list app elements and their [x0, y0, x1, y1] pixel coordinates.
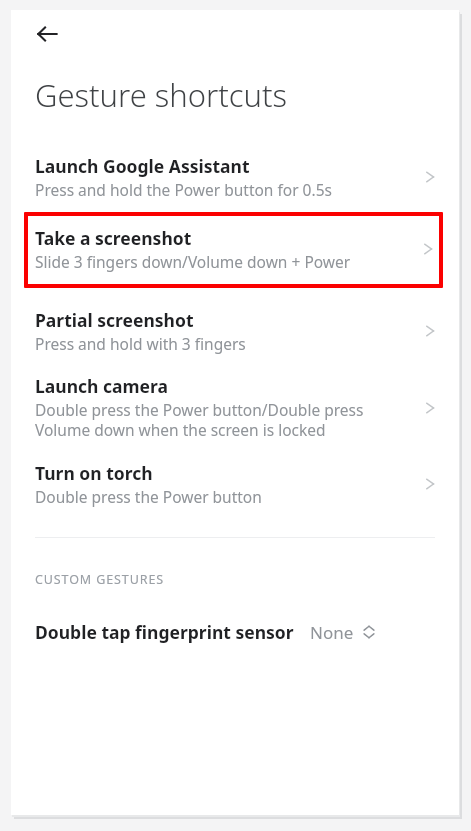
button[interactable]: Back — [23, 10, 71, 58]
staticText: Press and hold with 3 fingers — [35, 333, 246, 354]
button[interactable]: Launch Google Assistant — [11, 146, 459, 212]
staticText: Slide 3 fingers down/Volume down + Power — [35, 251, 351, 272]
staticText: Double press the Power button — [35, 486, 262, 507]
button[interactable]: Take a screenshot — [24, 212, 443, 288]
staticText: Launch Google Assistant — [35, 154, 250, 178]
staticText: Double press the Power button/Double pre… — [35, 399, 364, 441]
button[interactable]: Double tap fingerprint sensor — [11, 614, 459, 654]
staticText: Gesture shortcuts — [35, 74, 288, 116]
staticText: Double tap fingerprint sensor — [35, 620, 294, 644]
staticText: Press and hold the Power button for 0.5s — [35, 179, 332, 200]
button[interactable]: Partial screenshot — [11, 302, 459, 366]
staticText: Turn on torch — [35, 461, 153, 485]
staticText: CUSTOM GESTURES — [35, 571, 165, 588]
button[interactable]: Launch camera — [11, 366, 459, 453]
staticText: Launch camera — [35, 374, 168, 398]
staticText: Partial screenshot — [35, 308, 194, 332]
staticText: None — [310, 621, 354, 644]
staticText: Take a screenshot — [35, 226, 192, 250]
button[interactable]: Turn on torch — [11, 453, 459, 519]
